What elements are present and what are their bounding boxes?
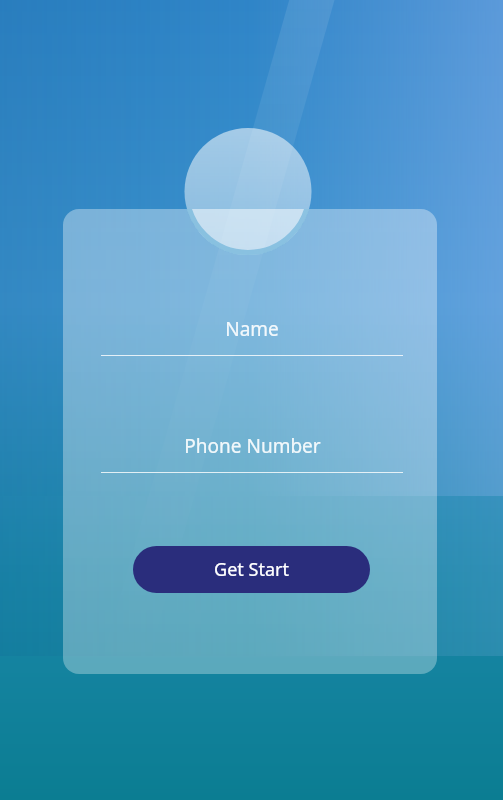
staticText: Name: [225, 316, 279, 342]
button[interactable]: Phone Number: [101, 433, 403, 473]
staticText: Get Start: [214, 557, 289, 582]
button[interactable]: Name: [101, 316, 403, 356]
button[interactable]: Get Start: [133, 546, 370, 593]
staticText: Phone Number: [184, 433, 321, 459]
